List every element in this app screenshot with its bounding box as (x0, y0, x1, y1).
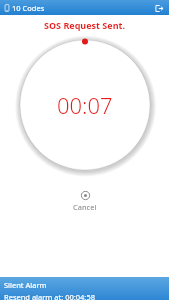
staticText: 00:07 (57, 90, 113, 120)
staticText: Resend alarm at: 00:04:58 (4, 292, 95, 300)
button[interactable]: Cancel (65, 189, 105, 214)
staticText: SOS Request Sent. (44, 19, 125, 31)
button[interactable]: Log out (152, 1, 166, 15)
staticText: 10 Codes (12, 3, 45, 13)
staticText: Silent Alarm (4, 280, 47, 290)
button[interactable]: 10 Codes (3, 2, 46, 14)
button[interactable]: Silent Alarm (0, 277, 169, 300)
staticText: Cancel (73, 202, 97, 212)
